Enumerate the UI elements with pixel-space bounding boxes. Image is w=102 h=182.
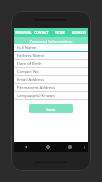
- button[interactable]: Permanent Address: [14, 84, 88, 92]
- staticText: Contact No: [17, 69, 39, 75]
- button[interactable]: Recent apps: [59, 142, 81, 152]
- staticText: Date of Birth: [17, 61, 42, 67]
- button[interactable]: Full Name: [14, 44, 88, 52]
- staticText: Language(s) Known: [17, 93, 55, 99]
- staticText: Full Name: [17, 45, 37, 51]
- staticText: Permanent Address: [17, 85, 56, 91]
- staticText: WORK: [55, 31, 65, 35]
- button[interactable]: Contact No: [14, 68, 88, 76]
- button[interactable]: PERSONAL: [14, 28, 32, 37]
- button[interactable]: Home: [37, 142, 59, 152]
- staticText: Save: [46, 106, 56, 112]
- button[interactable]: Save: [29, 104, 73, 113]
- button[interactable]: Date of Birth: [14, 60, 88, 68]
- staticText: Email Address: [17, 77, 45, 83]
- button[interactable]: CONTACT: [32, 28, 50, 37]
- staticText: CONTACT: [34, 31, 49, 35]
- staticText: Personal Information: [29, 38, 73, 44]
- staticText: PERSONAL: [15, 31, 32, 35]
- button[interactable]: Email Address: [14, 76, 88, 84]
- staticText: Fathers Name: [17, 53, 44, 59]
- staticText: ADDRESS: [72, 31, 86, 35]
- button[interactable]: More options: [81, 142, 88, 152]
- button[interactable]: Language(s) Known: [14, 92, 88, 100]
- button[interactable]: Back: [14, 142, 37, 152]
- button[interactable]: Fathers Name: [14, 52, 88, 60]
- button[interactable]: ADDRESS: [69, 28, 88, 37]
- button[interactable]: WORK: [50, 28, 69, 37]
